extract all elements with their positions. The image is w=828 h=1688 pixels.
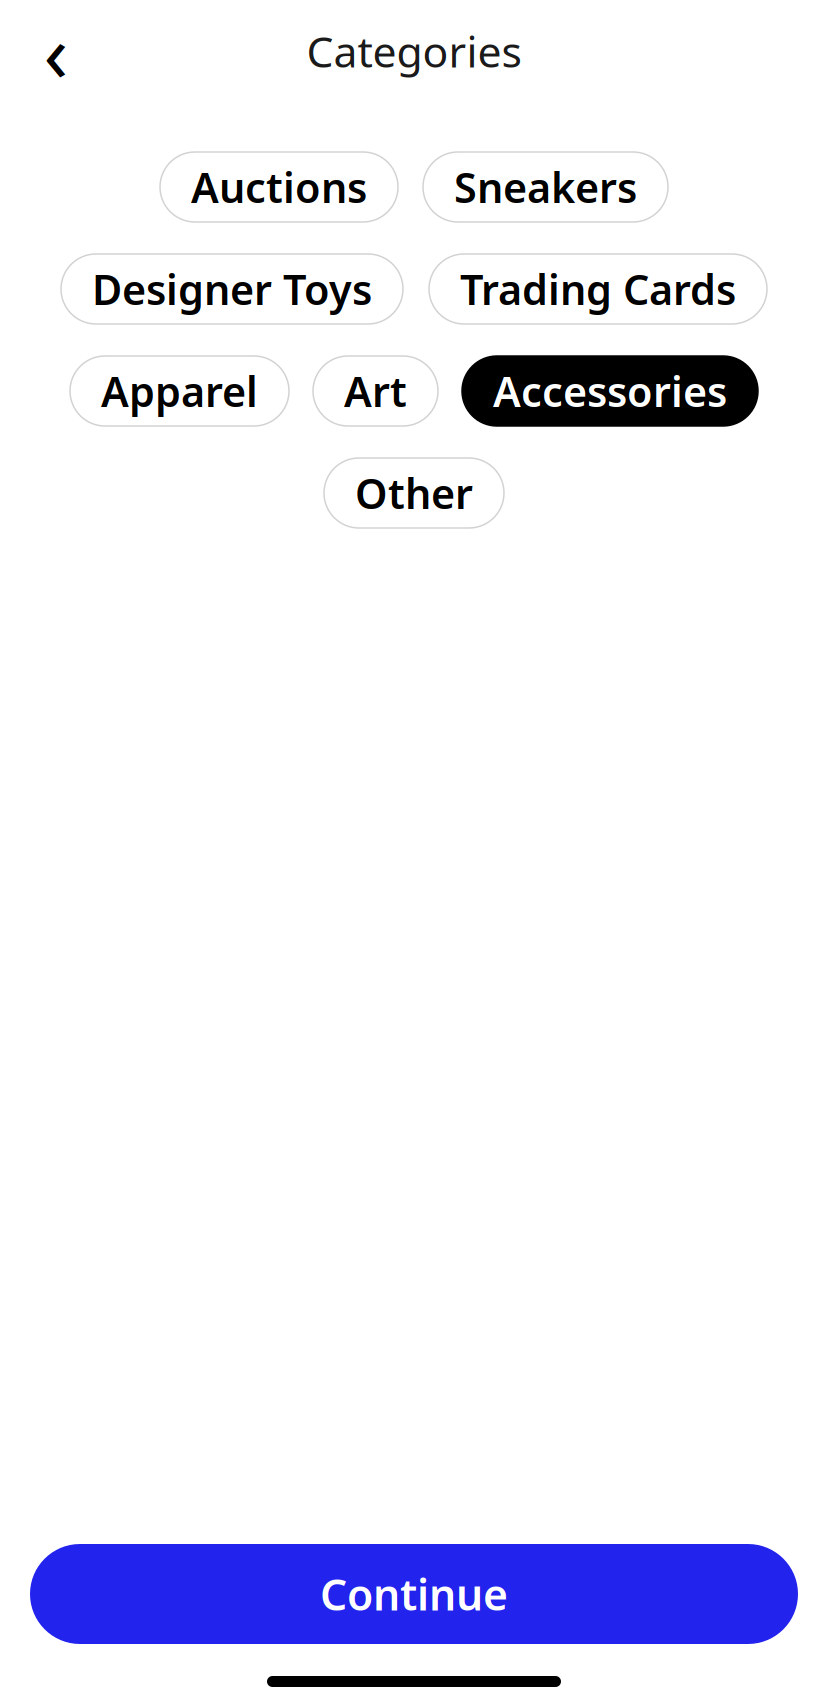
staticText: Auctions xyxy=(191,160,367,214)
staticText: Accessories xyxy=(493,364,727,418)
button[interactable]: Accessories xyxy=(462,356,758,426)
button[interactable]: Apparel xyxy=(70,356,289,426)
button[interactable]: Trading Cards xyxy=(429,254,767,324)
button[interactable]: Continue xyxy=(30,1544,798,1644)
staticText: Other xyxy=(355,466,473,520)
staticText: Categories xyxy=(306,23,521,79)
staticText: Apparel xyxy=(101,364,258,418)
staticText: Art xyxy=(344,364,407,418)
button[interactable]: Sneakers xyxy=(423,152,668,222)
staticText: Trading Cards xyxy=(460,262,736,316)
staticText: Designer Toys xyxy=(92,262,372,316)
button[interactable]: Back xyxy=(24,19,88,83)
button[interactable]: Art xyxy=(313,356,438,426)
button[interactable]: Auctions xyxy=(160,152,398,222)
staticText: Continue xyxy=(320,1566,508,1622)
staticText: Sneakers xyxy=(454,160,637,214)
button[interactable]: Other xyxy=(324,458,504,528)
button[interactable]: Designer Toys xyxy=(61,254,403,324)
staticText: ‹ xyxy=(43,0,68,104)
